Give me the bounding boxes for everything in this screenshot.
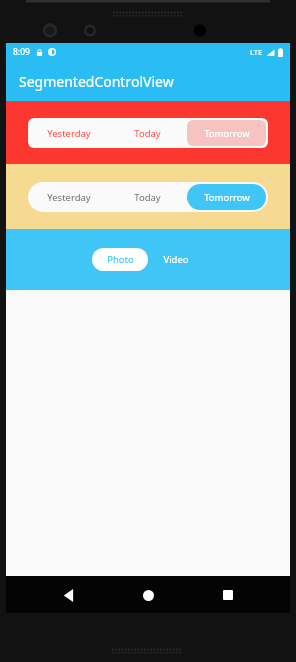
- button[interactable]: Yesterday: [30, 184, 108, 210]
- button[interactable]: Today: [108, 184, 187, 210]
- button[interactable]: Photo: [92, 248, 148, 271]
- button[interactable]: Tomorrow: [187, 120, 266, 146]
- staticText: Photo: [107, 253, 134, 266]
- staticText: Yesterday: [47, 127, 91, 140]
- button[interactable]: Recent apps: [211, 578, 245, 612]
- staticText: Today: [134, 191, 161, 204]
- staticText: Tomorrow: [204, 191, 250, 204]
- button[interactable]: Back: [52, 578, 86, 612]
- staticText: LTE: [250, 47, 263, 57]
- button[interactable]: Home: [131, 578, 165, 612]
- staticText: Yesterday: [47, 191, 91, 204]
- button[interactable]: Tomorrow: [187, 184, 266, 210]
- staticText: Today: [134, 127, 161, 140]
- staticText: SegmentedControlView: [19, 72, 174, 91]
- button[interactable]: Video: [148, 248, 204, 271]
- staticText: Tomorrow: [204, 127, 250, 140]
- button[interactable]: Yesterday: [30, 120, 108, 146]
- button[interactable]: Today: [108, 120, 187, 146]
- staticText: 8:09: [13, 46, 30, 58]
- staticText: Video: [163, 253, 189, 266]
